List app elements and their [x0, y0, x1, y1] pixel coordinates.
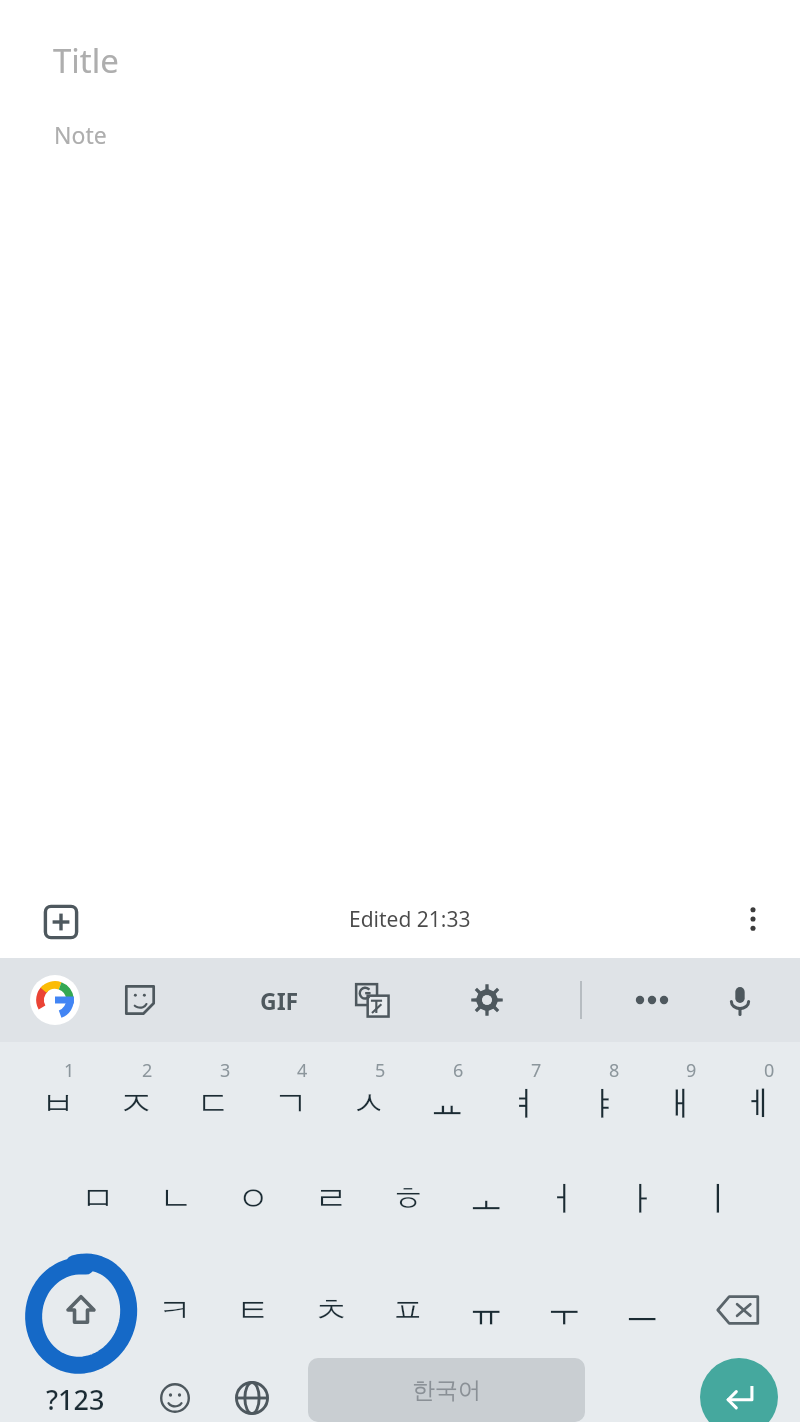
staticText: 7	[531, 1058, 542, 1083]
staticText: ?123	[46, 1381, 105, 1418]
button[interactable]: Translate	[348, 976, 396, 1024]
staticText: ㄴ	[159, 1177, 193, 1220]
staticText: ㅗ	[469, 1177, 503, 1220]
button[interactable]: ㄴ	[138, 1158, 214, 1238]
staticText: ㅊ	[314, 1289, 348, 1332]
button[interactable]: ㅌ	[215, 1270, 291, 1350]
button[interactable]: Stickers	[116, 976, 164, 1024]
staticText: ㄷ	[176, 1082, 252, 1125]
staticText: 1	[64, 1058, 75, 1083]
staticText: ㅕ	[487, 1082, 563, 1125]
staticText: 8	[609, 1058, 620, 1083]
staticText: 9	[686, 1058, 697, 1083]
button[interactable]: Backspace	[700, 1270, 776, 1350]
button[interactable]: ㅎ	[370, 1158, 446, 1238]
button[interactable]: Settings	[463, 976, 511, 1024]
button[interactable]: Emoji	[145, 1374, 205, 1422]
button[interactable]: ㅑ	[565, 1054, 641, 1142]
staticText: ㅛ	[409, 1082, 485, 1125]
button[interactable]: Add attachment	[38, 899, 84, 945]
staticText: ㅌ	[236, 1289, 270, 1332]
button[interactable]: ㅓ	[525, 1158, 601, 1238]
staticText: Note	[54, 119, 107, 150]
staticText: ㅡ	[625, 1289, 659, 1332]
button[interactable]: ㅋ	[137, 1270, 213, 1350]
button[interactable]: GIF	[248, 980, 310, 1020]
staticText: 0	[764, 1058, 775, 1083]
button[interactable]: ㅗ	[448, 1158, 524, 1238]
staticText: ㅂ	[20, 1082, 96, 1125]
staticText: ㅐ	[642, 1082, 718, 1125]
button[interactable]: Shift	[38, 1270, 124, 1350]
staticText: ㅑ	[565, 1082, 641, 1125]
button[interactable]: ㅔ	[720, 1054, 796, 1142]
button[interactable]: ㅇ	[215, 1158, 291, 1238]
staticText: ㅣ	[701, 1177, 735, 1220]
button[interactable]: ㄱ	[253, 1054, 329, 1142]
staticText: ㅔ	[720, 1082, 796, 1125]
button[interactable]: ㅛ	[409, 1054, 485, 1142]
staticText: ㅋ	[158, 1289, 192, 1332]
staticText: 5	[375, 1058, 386, 1083]
button[interactable]: ?123	[22, 1376, 128, 1422]
button[interactable]: ㅁ	[60, 1158, 136, 1238]
staticText: ㅇ	[236, 1177, 270, 1220]
button[interactable]: Enter	[700, 1358, 778, 1422]
staticText: ㅓ	[546, 1177, 580, 1220]
button[interactable]: ㅊ	[293, 1270, 369, 1350]
button[interactable]: Google search	[30, 975, 80, 1025]
staticText: ㅠ	[469, 1289, 503, 1332]
button[interactable]: ㅂ	[20, 1054, 96, 1142]
button[interactable]: More options	[728, 894, 778, 944]
staticText: 4	[297, 1058, 308, 1083]
staticText: 3	[220, 1058, 231, 1083]
button[interactable]: ㅏ	[603, 1158, 679, 1238]
staticText: 한국어	[412, 1376, 481, 1405]
staticText: ㅈ	[98, 1082, 174, 1125]
staticText: GIF	[260, 985, 299, 1016]
button[interactable]: ㅕ	[487, 1054, 563, 1142]
button[interactable]: More keyboard options	[626, 978, 678, 1022]
staticText: 2	[142, 1058, 153, 1083]
button[interactable]: ㄹ	[293, 1158, 369, 1238]
staticText: Title	[53, 38, 119, 83]
staticText: ㅅ	[331, 1082, 407, 1125]
button[interactable]: ㄷ	[176, 1054, 252, 1142]
staticText: ㅁ	[81, 1177, 115, 1220]
button[interactable]: 한국어	[308, 1358, 585, 1422]
staticText: ㅏ	[624, 1177, 658, 1220]
staticText: ㅜ	[547, 1289, 581, 1332]
button[interactable]: ㅜ	[526, 1270, 602, 1350]
staticText: ㄱ	[253, 1082, 329, 1125]
button[interactable]: ㅅ	[331, 1054, 407, 1142]
staticText: 6	[453, 1058, 464, 1083]
button[interactable]: ㅣ	[680, 1158, 756, 1238]
staticText: ㅎ	[391, 1177, 425, 1220]
button[interactable]: ㅠ	[448, 1270, 524, 1350]
button[interactable]: ㅍ	[370, 1270, 446, 1350]
button[interactable]: Voice input	[716, 976, 764, 1024]
staticText: ㅍ	[391, 1289, 425, 1332]
button[interactable]: Change language	[222, 1374, 282, 1422]
staticText: ㄹ	[314, 1177, 348, 1220]
button[interactable]: ㅐ	[642, 1054, 718, 1142]
button[interactable]: ㅡ	[604, 1270, 680, 1350]
button[interactable]: ㅈ	[98, 1054, 174, 1142]
staticText: Edited 21:33	[349, 905, 471, 934]
